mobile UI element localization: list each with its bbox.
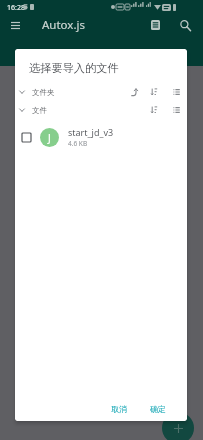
button[interactable]: 文件夹 [15,83,187,101]
staticText: 文件 [32,106,47,115]
staticText: 文件夹 [32,88,55,97]
button[interactable]: View mode [171,85,182,99]
button[interactable]: Log [144,14,166,36]
button[interactable]: Search [174,14,196,36]
button[interactable]: Add script [162,412,194,440]
button[interactable]: 取消 [106,400,132,418]
button[interactable]: 文件 [15,101,187,119]
staticText: 确定 [150,404,166,414]
button[interactable]: Sort [149,103,159,117]
button[interactable]: 确定 [145,400,171,418]
button[interactable]: Open navigation menu [5,15,26,36]
staticText: Autox.js [42,17,85,33]
staticText: 选择要导入的文件 [29,61,119,75]
button[interactable]: Sort [149,85,159,99]
button[interactable]: Up one level [129,85,140,99]
staticText: J [48,131,51,145]
button[interactable]: J [15,122,187,152]
staticText: start_jd_v3 [68,126,114,138]
staticText: 16:28 [7,3,25,13]
staticText: 4.6 KB [68,139,88,148]
button[interactable]: View mode [171,103,182,117]
staticText: 取消 [111,404,127,414]
